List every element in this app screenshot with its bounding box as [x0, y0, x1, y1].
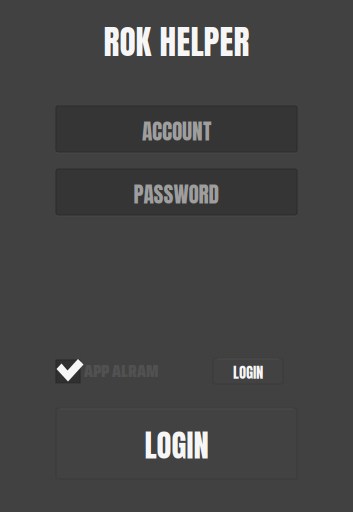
staticText: APP ALRAM [84, 357, 159, 385]
button[interactable]: ACCOUNT [56, 106, 297, 153]
button[interactable]: APP ALRAM [55, 359, 175, 385]
staticText: ACCOUNT [142, 115, 211, 147]
staticText: ROK HELPER [103, 17, 249, 67]
button[interactable]: PASSWORD [56, 169, 297, 216]
staticText: LOGIN [144, 422, 208, 469]
button[interactable]: LOGIN [56, 408, 297, 479]
staticText: LOGIN [233, 361, 263, 384]
staticText: PASSWORD [133, 178, 219, 210]
button[interactable]: LOGIN [213, 358, 283, 384]
